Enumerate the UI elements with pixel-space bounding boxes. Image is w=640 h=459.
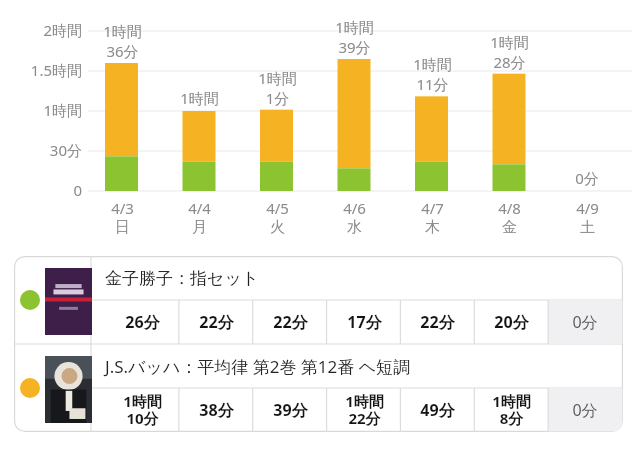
staticText: 4/5 火 <box>266 198 289 237</box>
staticText: 26分 <box>125 311 160 333</box>
other: Status <box>20 290 40 310</box>
staticText: 1時間 <box>43 100 82 120</box>
staticText: 22分 <box>420 311 455 333</box>
staticText: 1時間 1分 <box>258 68 297 108</box>
staticText: 22分 <box>273 311 308 333</box>
staticText: 22分 <box>199 311 234 333</box>
staticText: 0 <box>73 180 82 200</box>
staticText: 4/8 金 <box>498 198 521 237</box>
staticText: 0分 <box>572 311 598 333</box>
staticText: 1.5時間 <box>30 60 82 80</box>
button[interactable]: 0分 <box>548 300 622 344</box>
button[interactable]: 17分 <box>327 300 401 344</box>
button[interactable]: Cover art <box>45 268 92 335</box>
staticText: 1時間 10分 <box>123 391 162 429</box>
staticText: 1時間 39分 <box>335 17 374 57</box>
button[interactable]: 38分 <box>179 388 253 432</box>
button[interactable]: 22分 <box>179 300 253 344</box>
staticText: 4/4 月 <box>188 198 211 237</box>
button[interactable]: 22分 <box>400 300 474 344</box>
staticText: 4/9 土 <box>576 198 599 237</box>
button[interactable]: 22分 <box>253 300 327 344</box>
staticText: 4/3 日 <box>111 198 134 237</box>
staticText: 2時間 <box>43 20 82 40</box>
button[interactable]: 1時間 8分 <box>474 388 548 432</box>
staticText: 0分 <box>572 399 598 421</box>
button[interactable]: 金子勝子：指セット <box>105 256 623 300</box>
staticText: 4/6 水 <box>343 198 366 237</box>
staticText: 1時間 <box>180 88 219 108</box>
button[interactable]: 20分 <box>474 300 548 344</box>
staticText: 17分 <box>347 311 382 333</box>
button[interactable]: J.S.バッハ：平均律 第2巻 第12番 ヘ短調 <box>105 344 623 388</box>
staticText: 1時間 8分 <box>492 391 531 429</box>
button[interactable]: Cover art <box>45 356 92 423</box>
staticText: 20分 <box>494 311 529 333</box>
staticText: 金子勝子：指セット <box>105 268 260 289</box>
staticText: 1時間 28分 <box>490 32 529 72</box>
staticText: 30分 <box>49 140 82 160</box>
staticText: 1時間 11分 <box>413 54 452 94</box>
staticText: 38分 <box>199 399 234 421</box>
staticText: J.S.バッハ：平均律 第2巻 第12番 ヘ短調 <box>105 355 411 378</box>
button[interactable]: 49分 <box>400 388 474 432</box>
staticText: 1時間 22分 <box>345 391 384 429</box>
staticText: 0分 <box>575 168 599 188</box>
other: Status <box>20 378 40 398</box>
staticText: 4/7 木 <box>421 198 444 237</box>
button[interactable]: 0分 <box>548 388 622 432</box>
staticText: 39分 <box>273 399 308 421</box>
staticText: 1時間 36分 <box>103 21 142 61</box>
button[interactable]: 26分 <box>105 300 179 344</box>
button[interactable]: 1時間 22分 <box>327 388 401 432</box>
staticText: 49分 <box>420 399 455 421</box>
button[interactable]: 39分 <box>253 388 327 432</box>
button[interactable]: 1時間 10分 <box>105 388 179 432</box>
